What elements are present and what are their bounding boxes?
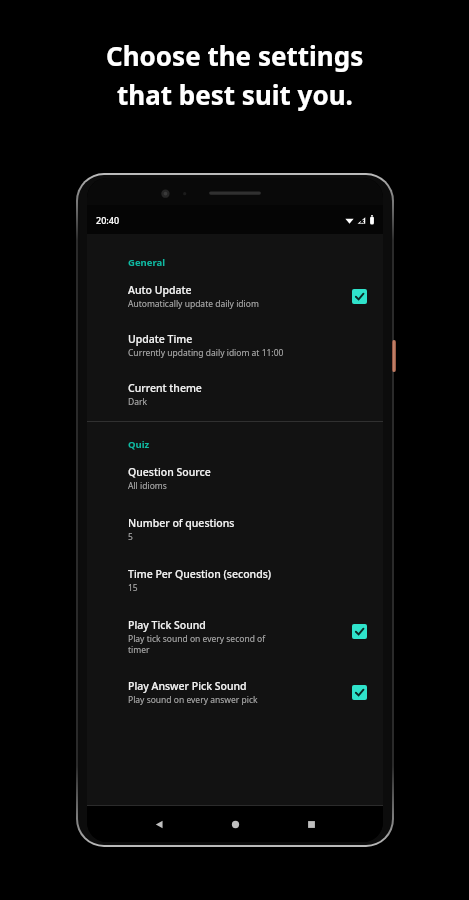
staticText: Update Time [128,332,193,346]
staticText: Choose the settings [106,38,364,73]
button[interactable]: Recent apps [273,806,349,842]
staticText: that best suit you. [117,77,353,112]
staticText: Question Source [128,465,211,479]
staticText: Current theme [128,381,202,395]
staticText: Play Answer Pick Sound [128,679,247,693]
button[interactable]: Update Time [87,321,383,370]
button[interactable]: Play Tick Sound [87,606,383,667]
button[interactable]: Back [121,806,197,842]
staticText: 20:40 [96,214,120,226]
button[interactable]: Play Tick Sound toggle [349,621,369,641]
staticText: All idioms [128,480,369,492]
staticText: Currently updating daily idiom at 11:00 [128,347,369,359]
button[interactable]: Auto Update toggle [349,286,369,306]
staticText: Automatically update daily idiom [128,298,349,310]
staticText: 15 [128,582,369,594]
button[interactable]: Current theme [87,370,383,421]
staticText: Play Tick Sound [128,618,206,632]
button[interactable]: Play Answer Pick Sound [87,667,383,718]
staticText: Dark [128,396,369,408]
staticText: Play tick sound on every second of timer [128,633,278,655]
staticText: Time Per Question (seconds) [128,567,272,581]
staticText: Auto Update [128,283,192,297]
staticText: 5 [128,531,369,543]
button[interactable]: Time Per Question (seconds) [87,555,383,606]
staticText: Number of questions [128,516,235,530]
staticText: General [128,256,165,269]
staticText: Play sound on every answer pick [128,694,349,706]
button[interactable]: Home [197,806,273,842]
button[interactable]: Question Source [87,453,383,504]
button[interactable]: Play Answer Pick Sound toggle [349,682,369,702]
staticText: Quiz [128,438,150,451]
button[interactable]: Auto Update [87,271,383,321]
button[interactable]: Number of questions [87,504,383,555]
